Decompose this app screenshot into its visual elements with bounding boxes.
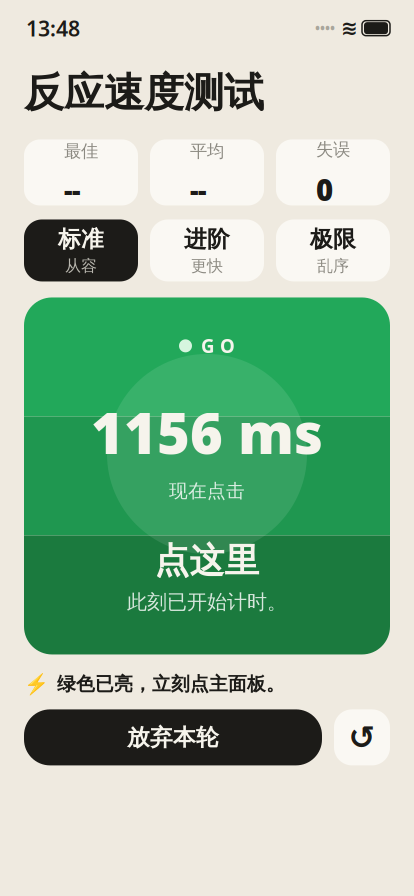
staticText: 更快 [191, 256, 223, 276]
staticText: 从容 [65, 256, 97, 276]
staticText: ≋ [341, 17, 358, 39]
staticText: 失误 [316, 139, 350, 160]
staticText: 乱序 [317, 256, 349, 276]
staticText: -- [64, 172, 80, 207]
staticText: 标准 [58, 225, 104, 253]
staticText: 最佳 [64, 141, 98, 162]
button[interactable]: 极限 [276, 219, 390, 281]
staticText: 现在点击 [169, 479, 245, 502]
staticText: 0 [316, 170, 333, 209]
staticText: 此刻已开始计时。 [127, 590, 287, 614]
staticText: 1156 ms [91, 395, 323, 469]
staticText: 点这里 [154, 539, 259, 582]
button[interactable]: 标准 [24, 219, 138, 281]
staticText: 放弃本轮 [127, 723, 219, 751]
staticText: 绿色已亮，立刻点主面板。 [57, 672, 285, 695]
staticText: 极限 [310, 225, 356, 253]
staticText: 13:48 [26, 14, 80, 42]
staticText: •••• [315, 19, 335, 37]
staticText: 进阶 [184, 225, 230, 253]
staticText: 平均 [190, 141, 224, 162]
staticText: ↺ [348, 719, 375, 755]
button[interactable]: 进阶 [150, 219, 264, 281]
staticText: ⚡ [24, 672, 49, 695]
staticText: -- [190, 172, 206, 207]
button[interactable]: 放弃本轮 [24, 709, 322, 765]
staticText: 反应速度测试 [24, 68, 264, 117]
button[interactable]: 点这里 [24, 297, 390, 654]
button[interactable]: 重置 [334, 709, 390, 765]
staticText: G O [201, 333, 235, 358]
